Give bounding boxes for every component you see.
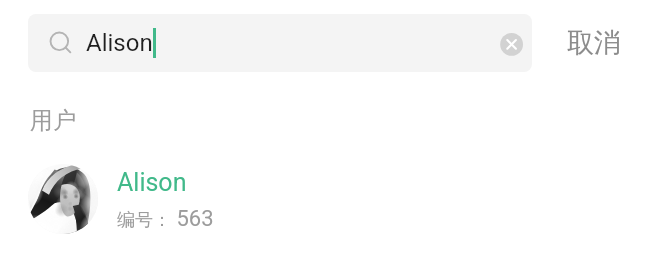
staticText: 用户: [30, 106, 76, 135]
button[interactable]: Alison: [0, 155, 652, 243]
button[interactable]: 取消: [567, 26, 621, 60]
button[interactable]: Clear text: [491, 24, 529, 62]
button[interactable]: Alison: [28, 14, 532, 72]
staticText: Alison: [86, 29, 153, 57]
staticText: 取消: [567, 26, 621, 60]
staticText: 编号： 563: [117, 206, 214, 232]
staticText: Alison: [117, 168, 187, 197]
